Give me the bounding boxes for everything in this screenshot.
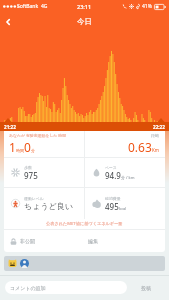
- button[interactable]: Back: [0, 14, 16, 30]
- staticText: コメントの追加: [10, 285, 46, 291]
- staticText: 4G: [41, 3, 48, 10]
- staticText: 歩数: [24, 165, 32, 170]
- staticText: 21:22: [4, 124, 16, 130]
- staticText: 94.9: [105, 170, 121, 181]
- staticText: SoftBank: [17, 3, 39, 10]
- staticText: 時間: [16, 148, 24, 153]
- staticText: 0.63: [128, 139, 152, 155]
- staticText: 分 / km: [121, 175, 135, 180]
- staticText: 1: [9, 139, 16, 155]
- staticText: 41%: [142, 3, 152, 10]
- staticText: 総消費量: [105, 196, 121, 201]
- staticText: 495: [105, 201, 119, 212]
- staticText: 22:22: [153, 124, 165, 130]
- staticText: 公表されたMET値に基づくエネルギー量: [46, 221, 123, 227]
- button[interactable]: 投稿: [127, 281, 165, 295]
- staticText: ちょうど良い: [24, 201, 73, 211]
- staticText: ペース: [105, 165, 117, 170]
- staticText: 非公開: [20, 238, 35, 244]
- staticText: 23:11: [77, 3, 92, 10]
- staticText: 975: [24, 170, 38, 181]
- button[interactable]: 非公開: [4, 230, 165, 252]
- staticText: Km: [152, 147, 159, 153]
- button[interactable]: コメントの追加: [5, 281, 127, 294]
- button[interactable]: [4, 256, 165, 271]
- staticText: 距離: [151, 133, 159, 138]
- staticText: 0: [24, 139, 31, 155]
- staticText: 今日: [77, 17, 92, 26]
- staticText: 運動レベル: [24, 196, 44, 201]
- staticText: 投稿: [141, 285, 151, 291]
- staticText: 分: [31, 148, 35, 153]
- staticText: 編集: [88, 238, 98, 244]
- staticText: kcal: [119, 206, 127, 211]
- staticText: あなたが 有酸素運動をした 時間: [9, 133, 67, 138]
